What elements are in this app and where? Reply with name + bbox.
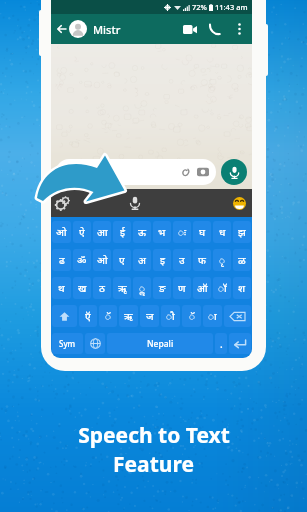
button[interactable]: ई — [113, 221, 131, 243]
button[interactable]: फ — [193, 249, 211, 271]
button[interactable]: ऑ — [193, 277, 211, 299]
staticText: ऐ — [79, 225, 85, 239]
button[interactable]: उ — [173, 249, 191, 271]
staticText: ए — [119, 253, 125, 267]
staticText: Feature — [113, 450, 194, 479]
button[interactable]: Voice input — [125, 193, 145, 213]
staticText: श — [238, 281, 246, 295]
button[interactable]: Language — [85, 333, 105, 354]
staticText: . — [220, 337, 223, 351]
button[interactable]: ः — [173, 221, 191, 243]
staticText: ध — [219, 225, 226, 239]
staticText: 11:43 am — [215, 2, 248, 12]
staticText: फ — [198, 253, 206, 267]
staticText: ृ — [219, 253, 225, 267]
staticText: ख — [78, 281, 87, 295]
staticText: Mistr — [93, 22, 121, 37]
button[interactable]: ण — [173, 277, 191, 299]
button[interactable]: ा — [203, 305, 222, 327]
staticText: ऋ — [124, 309, 133, 323]
staticText: ढ — [59, 253, 65, 267]
button[interactable]: Video call — [181, 20, 199, 38]
staticText: ठ — [99, 281, 105, 295]
button[interactable]: ङ — [153, 277, 171, 299]
staticText: Message — [66, 166, 106, 179]
button[interactable]: Message — [56, 159, 216, 185]
staticText: ज — [146, 309, 154, 323]
staticText: ॅ — [105, 309, 111, 323]
button[interactable]: Back — [54, 22, 68, 36]
button[interactable]: ॅ — [99, 305, 117, 327]
button[interactable]: Nepali — [107, 333, 213, 354]
button[interactable]: ृ — [213, 249, 231, 271]
staticText: ओ — [97, 253, 108, 267]
staticText: ऑ — [197, 281, 208, 295]
staticText: ऍ — [85, 309, 91, 323]
staticText: ः — [178, 225, 186, 239]
button[interactable]: Shift — [52, 305, 77, 327]
staticText: ओ — [56, 225, 67, 239]
button[interactable]: ॅ — [182, 305, 201, 327]
staticText: ई — [120, 225, 125, 239]
button[interactable]: ॠ — [113, 277, 131, 299]
button[interactable]: ऍ — [79, 305, 97, 327]
button[interactable]: श — [233, 277, 251, 299]
staticText: ळ — [238, 253, 246, 267]
button[interactable]: Settings — [54, 194, 72, 212]
button[interactable]: ळ — [233, 249, 251, 271]
button[interactable]: इ — [153, 249, 171, 271]
staticText: ौ — [166, 309, 175, 323]
button[interactable]: भ — [153, 221, 171, 243]
staticText: घ — [199, 225, 206, 239]
staticText: ॉ — [218, 281, 227, 295]
button[interactable]: घ — [193, 221, 211, 243]
staticText: थ — [58, 281, 65, 295]
staticText: अ — [138, 253, 146, 267]
button[interactable]: Sym — [52, 333, 83, 354]
button[interactable]: थ — [52, 277, 71, 299]
button[interactable]: ॉ — [213, 277, 231, 299]
staticText: इ — [160, 253, 165, 267]
button[interactable]: अ — [133, 249, 151, 271]
staticText: आ — [97, 225, 108, 239]
button[interactable]: आ — [93, 221, 111, 243]
button[interactable]: झ — [233, 221, 251, 243]
staticText: भ — [158, 225, 166, 239]
button[interactable]: Enter — [229, 333, 251, 354]
button[interactable]: ध — [213, 221, 231, 243]
staticText: ॢ — [139, 281, 145, 295]
button[interactable]: ौ — [161, 305, 180, 327]
button[interactable]: ठ — [93, 277, 111, 299]
button[interactable]: . — [215, 333, 227, 354]
staticText: झ — [238, 225, 246, 239]
staticText: ा — [208, 309, 217, 323]
staticText: ॅ — [189, 309, 195, 323]
button[interactable]: ओ — [52, 221, 71, 243]
staticText: ॐ — [77, 253, 87, 267]
button[interactable]: ऋ — [119, 305, 138, 327]
button[interactable]: ऊ — [133, 221, 151, 243]
staticText: ण — [178, 281, 186, 295]
button[interactable]: ढ — [52, 249, 71, 271]
button[interactable]: ख — [73, 277, 91, 299]
staticText: Nepali — [147, 338, 174, 350]
button[interactable]: Backspace — [224, 305, 251, 327]
button[interactable]: ओ — [93, 249, 111, 271]
button[interactable]: Emoji — [232, 196, 247, 211]
staticText: Speech to Text — [78, 421, 230, 450]
button[interactable]: More options — [231, 21, 247, 37]
staticText: Sym — [59, 338, 76, 349]
button[interactable]: Voice message — [221, 159, 247, 185]
button[interactable]: ॐ — [73, 249, 91, 271]
staticText: उ — [179, 253, 185, 267]
staticText: 72% — [192, 2, 207, 12]
button[interactable]: ए — [113, 249, 131, 271]
button[interactable]: Call — [206, 20, 224, 38]
button[interactable]: ऐ — [73, 221, 91, 243]
staticText: ॠ — [118, 281, 127, 295]
staticText: ङ — [159, 281, 166, 295]
staticText: ऊ — [138, 225, 146, 239]
button[interactable]: ॢ — [133, 277, 151, 299]
button[interactable]: ज — [140, 305, 159, 327]
